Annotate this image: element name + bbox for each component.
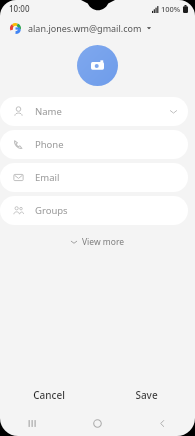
staticText: Email xyxy=(35,171,60,184)
button[interactable]: Name xyxy=(0,97,188,126)
button[interactable]: Phone xyxy=(0,130,188,159)
button[interactable]: Email xyxy=(0,163,188,192)
button[interactable]: Back xyxy=(130,410,195,436)
button[interactable]: Save xyxy=(97,380,195,410)
staticText: alan.jones.wm@gmail.com xyxy=(28,22,142,34)
staticText: Save xyxy=(135,388,158,402)
button[interactable]: Groups xyxy=(0,196,188,225)
button[interactable]: View more xyxy=(62,233,133,251)
button[interactable]: Change profile picture xyxy=(77,45,118,86)
button[interactable]: alan.jones.wm@gmail.com xyxy=(0,17,195,39)
staticText: Cancel xyxy=(33,388,65,402)
staticText: 10:00 xyxy=(9,3,30,14)
staticText: View more xyxy=(82,236,125,248)
staticText: Groups xyxy=(35,204,68,217)
button[interactable]: Home xyxy=(65,410,130,436)
staticText: Name xyxy=(35,105,62,118)
button[interactable]: Recent apps xyxy=(0,410,65,436)
staticText: 100% xyxy=(161,4,181,14)
staticText: Phone xyxy=(35,138,64,151)
button[interactable]: Cancel xyxy=(0,380,97,410)
